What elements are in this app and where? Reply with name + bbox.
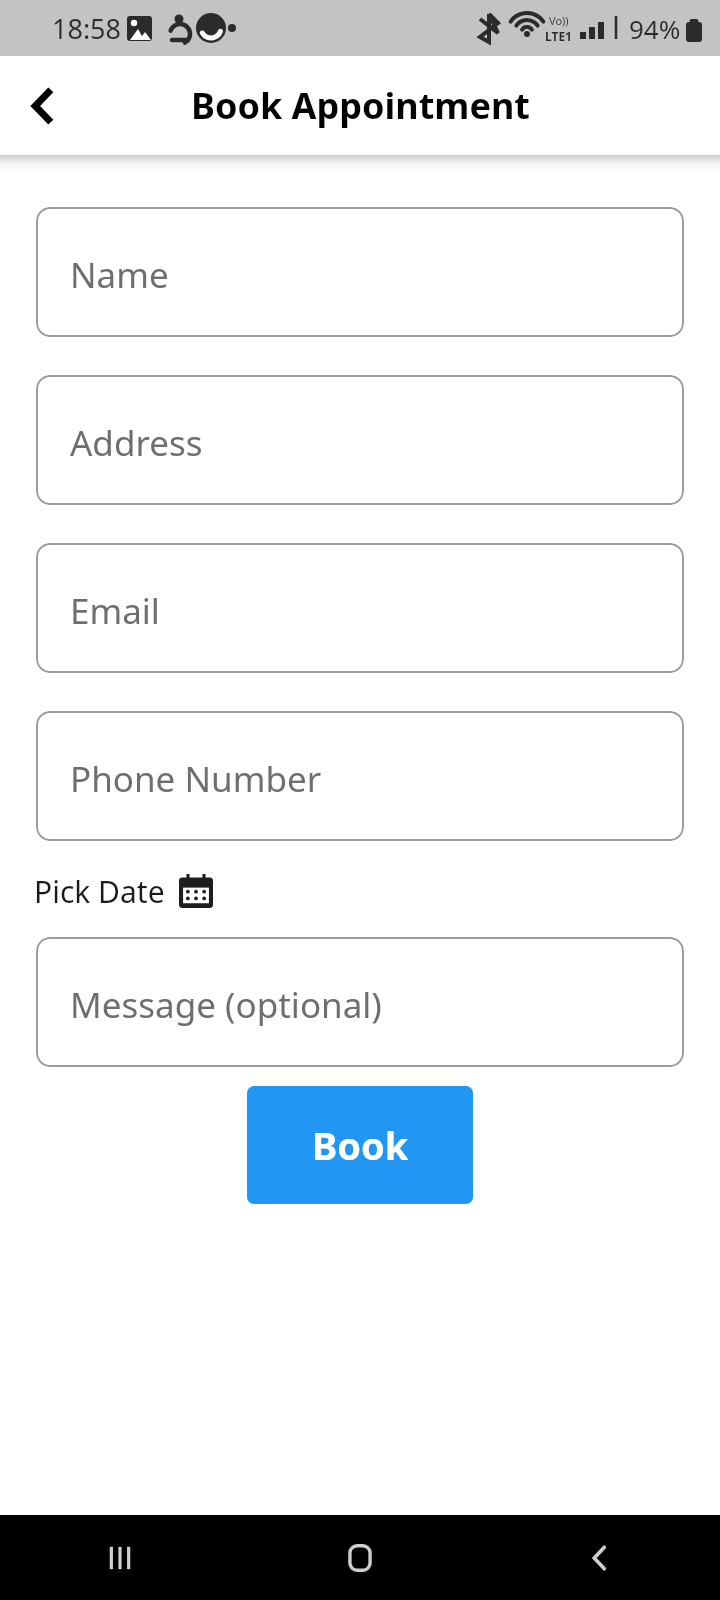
button[interactable]: Book bbox=[247, 1086, 473, 1204]
button[interactable]: Home bbox=[240, 1515, 480, 1600]
staticText: Message (optional) bbox=[70, 981, 382, 1029]
staticText: Name bbox=[70, 251, 169, 299]
button[interactable]: Back bbox=[480, 1515, 720, 1600]
staticText: Book Appointment bbox=[191, 81, 530, 130]
staticText: 94% bbox=[629, 11, 681, 46]
staticText: 18:58 bbox=[52, 10, 122, 47]
button[interactable]: Name bbox=[36, 207, 684, 337]
button[interactable]: Back bbox=[14, 78, 70, 134]
button[interactable]: Message (optional) bbox=[36, 937, 684, 1067]
staticText: Address bbox=[70, 419, 203, 467]
button[interactable]: Pick Date bbox=[34, 867, 213, 915]
staticText: LTE1 bbox=[545, 28, 572, 44]
button[interactable]: Address bbox=[36, 375, 684, 505]
button[interactable]: Phone Number bbox=[36, 711, 684, 841]
staticText: Email bbox=[70, 587, 160, 635]
staticText: Book bbox=[312, 1119, 409, 1171]
staticText: Phone Number bbox=[70, 755, 322, 803]
staticText: Vo)) bbox=[549, 13, 569, 28]
staticText: Pick Date bbox=[34, 871, 165, 912]
other: Pick Date bbox=[179, 874, 213, 908]
button[interactable]: Email bbox=[36, 543, 684, 673]
button[interactable]: Recent apps bbox=[0, 1515, 240, 1600]
